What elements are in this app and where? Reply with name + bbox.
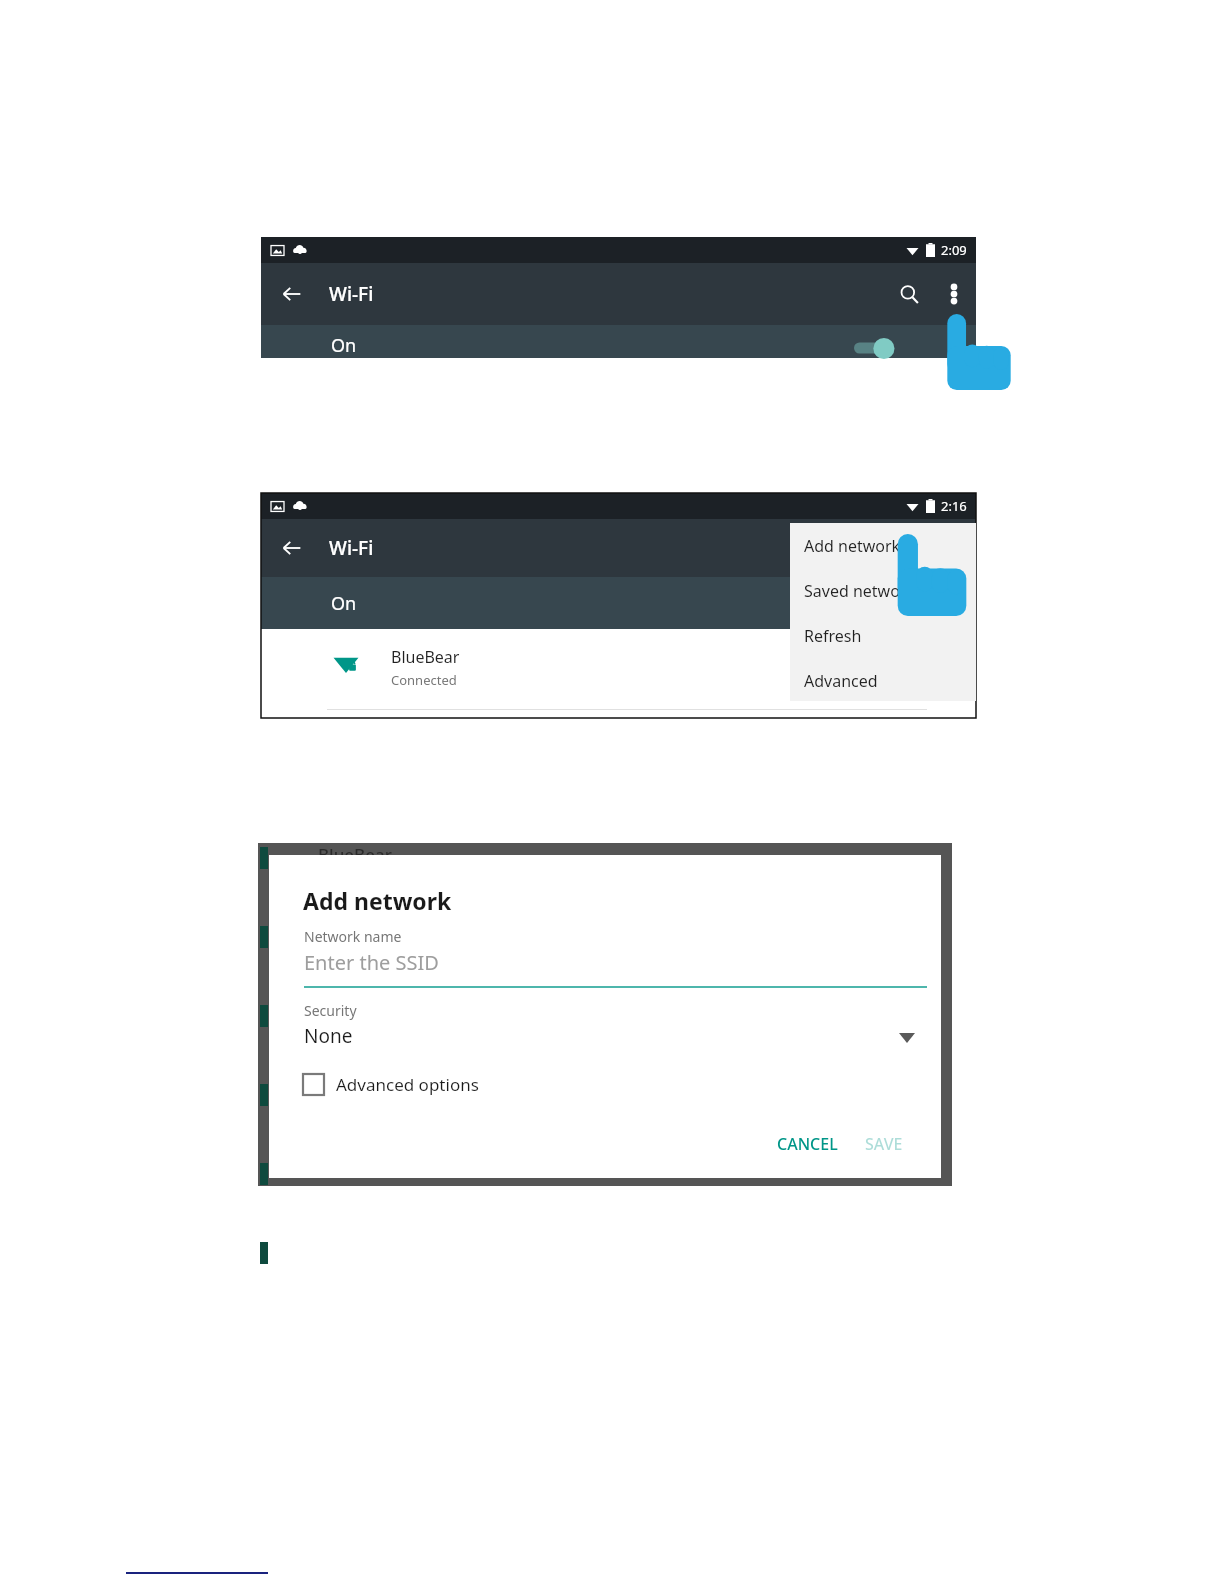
staticText: On: [331, 591, 357, 616]
staticText: Network name: [304, 927, 402, 946]
button[interactable]: Refresh: [790, 613, 976, 658]
staticText: BlueBear: [391, 646, 460, 668]
staticText: Add network: [804, 535, 901, 557]
staticText: 2:09: [941, 241, 967, 259]
button[interactable]: None: [304, 1021, 927, 1055]
staticText: Saved networks: [804, 580, 923, 602]
staticText: Advanced: [804, 670, 878, 692]
staticText: Advanced options: [336, 1073, 479, 1096]
button[interactable]: [854, 337, 898, 359]
button[interactable]: CANCEL: [769, 1127, 846, 1161]
staticText: CANCEL: [777, 1133, 838, 1155]
staticText: None: [304, 1023, 353, 1049]
button[interactable]: Back: [277, 279, 307, 309]
button[interactable]: Saved networks: [790, 568, 976, 613]
button[interactable]: BlueBear: [261, 629, 976, 718]
staticText: Refresh: [804, 625, 862, 647]
button[interactable]: Advanced options: [303, 1067, 479, 1101]
other: Tap overflow menu: [943, 314, 1015, 390]
staticText: Wi-Fi: [329, 535, 374, 561]
staticText: Add network: [303, 885, 452, 916]
other: Back: [281, 537, 303, 559]
other: Back: [281, 283, 303, 305]
staticText: Connected: [391, 671, 457, 689]
button[interactable]: Enter the SSID: [304, 947, 904, 987]
button[interactable]: Back: [277, 533, 307, 563]
staticText: BlueBear: [318, 843, 392, 866]
other: Tap Add network: [893, 534, 971, 616]
staticText: Security: [304, 1001, 357, 1020]
button[interactable]: More options: [946, 279, 962, 309]
staticText: On: [331, 333, 357, 358]
button[interactable]: SAVE: [857, 1127, 911, 1161]
button[interactable]: Search: [895, 280, 924, 309]
button[interactable]: Advanced: [790, 658, 976, 703]
staticText: Enter the SSID: [304, 949, 439, 976]
other: Expand security options: [899, 1033, 915, 1043]
staticText: Wi-Fi: [329, 281, 374, 307]
staticText: SAVE: [865, 1133, 903, 1155]
staticText: 2:16: [941, 497, 967, 515]
button[interactable]: Add network: [790, 523, 976, 568]
